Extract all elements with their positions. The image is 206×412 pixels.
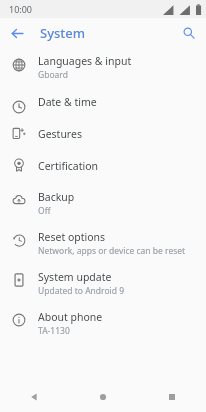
button[interactable]: Search (177, 21, 201, 45)
staticText: Languages & input (38, 54, 132, 68)
staticText: Gestures (38, 127, 82, 141)
staticText: System update (38, 270, 112, 284)
staticText: Backup (38, 190, 75, 204)
staticText: System (40, 24, 86, 42)
button[interactable]: Reset options (0, 224, 206, 264)
button[interactable]: Back (0, 382, 68, 412)
button[interactable]: Date & time (0, 88, 206, 120)
button[interactable]: Certification (0, 152, 206, 184)
staticText: Network, apps or device can be reset (38, 245, 186, 257)
staticText: Date & time (38, 95, 97, 109)
staticText: Off (38, 205, 51, 217)
button[interactable]: Home (68, 382, 137, 412)
button[interactable]: About phone (0, 304, 206, 344)
staticText: Updated to Android 9 (38, 285, 125, 297)
button[interactable]: Languages & input (0, 48, 206, 88)
button[interactable]: System update (0, 264, 206, 304)
button[interactable]: Backup (0, 184, 206, 224)
button[interactable]: Recents (137, 382, 206, 412)
staticText: Certification (38, 159, 98, 173)
staticText: TA-1130 (38, 325, 70, 337)
button[interactable]: Gestures (0, 120, 206, 152)
staticText: 10:00 (9, 3, 33, 15)
button[interactable]: Back (4, 20, 30, 46)
staticText: About phone (38, 310, 103, 324)
staticText: Gboard (38, 69, 68, 81)
staticText: Reset options (38, 230, 106, 244)
